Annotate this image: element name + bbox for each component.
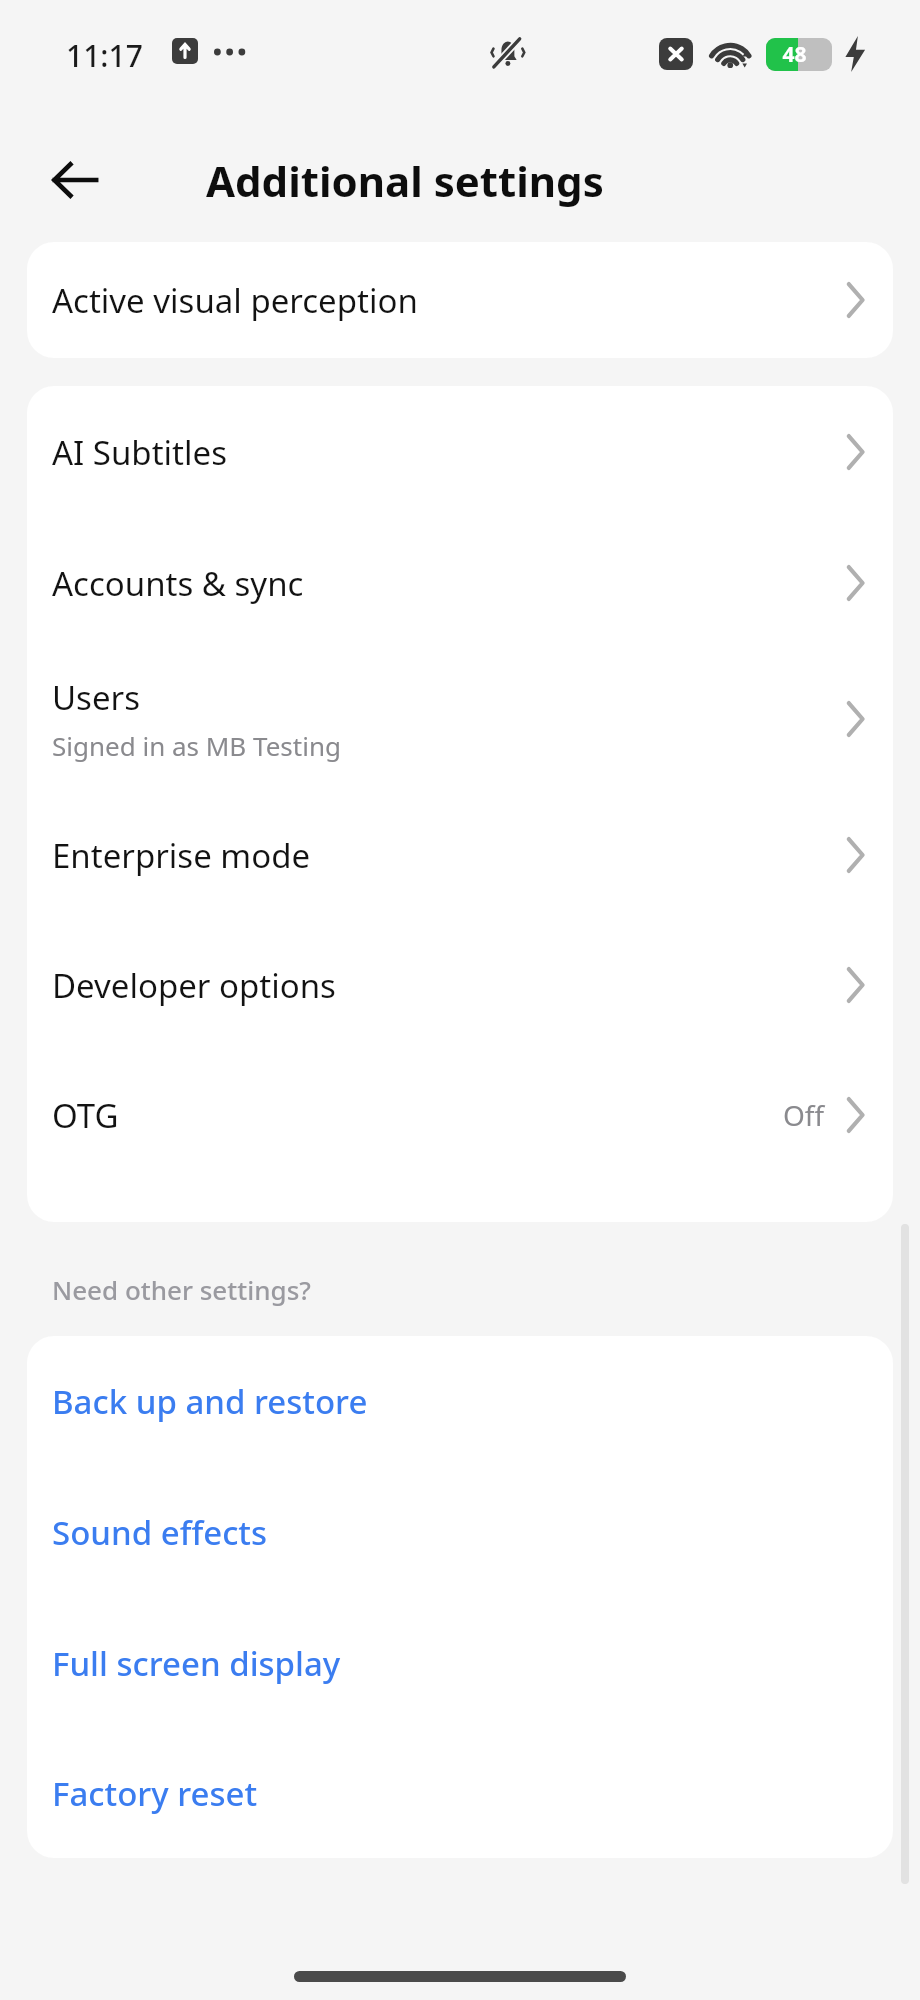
staticText: Factory reset — [52, 1771, 258, 1816]
staticText: Sound effects — [52, 1510, 268, 1555]
staticText: Developer options — [52, 963, 336, 1008]
staticText: Full screen display — [52, 1641, 341, 1686]
button[interactable]: Developer options — [27, 920, 893, 1050]
button[interactable]: Sound effects — [27, 1467, 893, 1598]
staticText: Accounts & sync — [52, 561, 304, 606]
button[interactable]: Accounts & sync — [27, 518, 893, 648]
button[interactable]: Users — [27, 648, 893, 790]
staticText: Back up and restore — [52, 1379, 368, 1424]
staticText: Need other settings? — [52, 1272, 311, 1307]
button[interactable]: Back up and restore — [27, 1336, 893, 1467]
button[interactable]: Factory reset — [27, 1729, 893, 1858]
staticText: 11:17 — [66, 35, 143, 76]
staticText: 48 — [782, 40, 807, 69]
button[interactable]: Active visual perception — [27, 242, 893, 358]
staticText: Active visual perception — [52, 278, 418, 323]
button[interactable]: OTG — [27, 1050, 893, 1180]
staticText: OTG — [52, 1093, 119, 1138]
staticText: Enterprise mode — [52, 833, 311, 878]
button[interactable]: Enterprise mode — [27, 790, 893, 920]
button[interactable]: Back — [40, 145, 110, 215]
staticText: Signed in as MB Testing — [52, 728, 341, 763]
staticText: Additional settings — [206, 152, 604, 209]
staticText: Users — [52, 675, 140, 720]
staticText: AI Subtitles — [52, 430, 227, 475]
staticText: Off — [783, 1096, 825, 1134]
button[interactable]: AI Subtitles — [27, 386, 893, 518]
button[interactable]: Full screen display — [27, 1598, 893, 1729]
